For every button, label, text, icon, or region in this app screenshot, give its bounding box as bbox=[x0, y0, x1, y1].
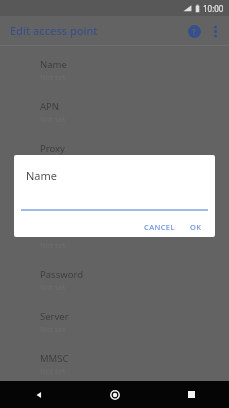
staticText: Password bbox=[40, 268, 83, 281]
staticText: ? bbox=[192, 26, 196, 37]
staticText: 10:00 bbox=[203, 3, 224, 14]
staticText: OK bbox=[190, 222, 202, 232]
staticText: Name bbox=[26, 168, 58, 183]
button[interactable]: More options bbox=[205, 21, 225, 41]
staticText: MMSC bbox=[40, 352, 69, 365]
staticText: Username bbox=[40, 226, 87, 239]
staticText: MMS proxy bbox=[40, 394, 90, 404]
staticText: CANCEL bbox=[144, 222, 175, 232]
staticText: Server bbox=[40, 310, 69, 323]
staticText: Name bbox=[40, 58, 67, 71]
staticText: Proxy bbox=[40, 142, 65, 155]
staticText: Edit access point bbox=[10, 23, 98, 38]
staticText: APN bbox=[40, 100, 60, 113]
button[interactable]: Home bbox=[77, 381, 153, 408]
button[interactable]: MMSC bbox=[0, 348, 229, 390]
button[interactable]: Username bbox=[0, 222, 229, 264]
button[interactable] bbox=[21, 199, 208, 211]
button[interactable]: Recent apps bbox=[153, 381, 229, 408]
button[interactable]: MMS proxy bbox=[0, 390, 229, 408]
button[interactable]: Back bbox=[0, 381, 77, 408]
button[interactable]: Port bbox=[0, 180, 229, 222]
button[interactable]: OK bbox=[186, 218, 206, 236]
button[interactable]: Proxy bbox=[0, 138, 229, 180]
button[interactable]: CANCEL bbox=[140, 218, 179, 236]
button[interactable]: Help bbox=[183, 20, 205, 42]
